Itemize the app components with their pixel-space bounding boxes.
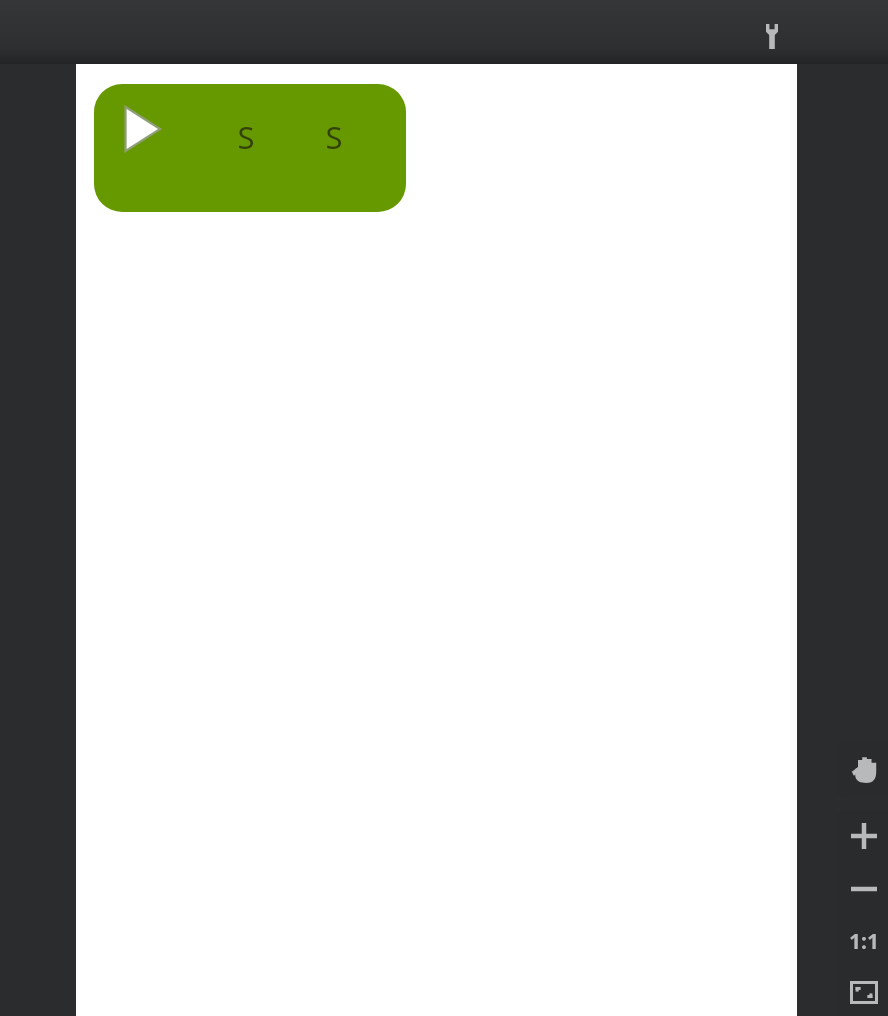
button[interactable]: Settings — [750, 14, 794, 58]
button[interactable]: Fit to screen — [836, 968, 888, 1016]
staticText: 1:1 — [849, 927, 879, 956]
button[interactable]: Pan — [836, 740, 888, 797]
staticText: S — [237, 116, 255, 154]
button[interactable]: Play — [94, 84, 406, 212]
button[interactable]: Zoom in — [836, 810, 888, 862]
button[interactable]: 1:1 — [836, 916, 888, 966]
other: Play — [125, 109, 158, 149]
staticText: S — [325, 116, 343, 154]
button[interactable]: Zoom out — [836, 864, 888, 914]
